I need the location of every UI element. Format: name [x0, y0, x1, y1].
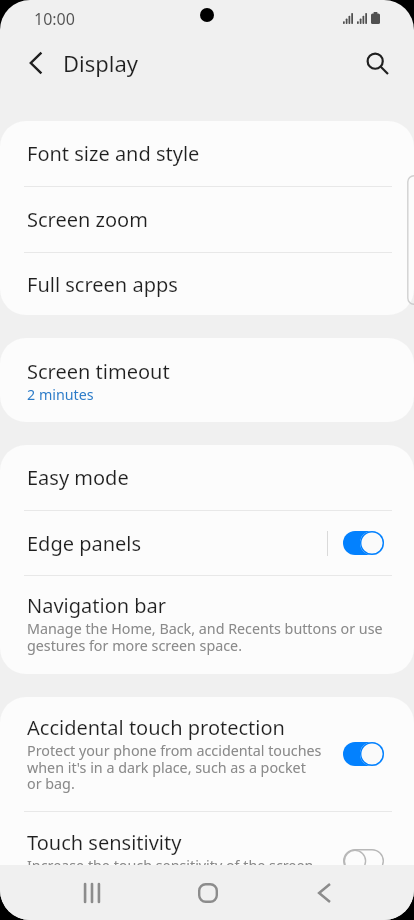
button[interactable]: Edge panels — [0, 511, 414, 575]
staticText: Font size and style — [27, 140, 200, 167]
staticText: Navigation bar — [27, 592, 167, 619]
button[interactable]: Home — [178, 865, 238, 920]
button[interactable]: Navigation bar — [0, 576, 414, 674]
button[interactable]: Back — [294, 865, 354, 920]
staticText: 10:00 — [34, 8, 75, 30]
button[interactable]: Easy mode — [0, 445, 414, 510]
staticText: Easy mode — [27, 464, 129, 491]
button[interactable]: Search — [353, 39, 401, 87]
staticText: Screen timeout — [27, 358, 170, 385]
button[interactable]: Screen timeout — [0, 338, 414, 422]
staticText: Manage the Home, Back, and Recents butto… — [27, 619, 383, 655]
button[interactable]: Off — [343, 849, 384, 873]
button[interactable]: Accidental touch protection — [0, 697, 414, 811]
button[interactable]: On — [343, 531, 384, 555]
button[interactable]: Navigate up — [12, 39, 60, 87]
button[interactable]: Full screen apps — [0, 253, 414, 315]
staticText: Accidental touch protection — [27, 714, 285, 741]
staticText: Increase the touch sensitivity of the sc… — [27, 856, 314, 892]
button[interactable]: On — [343, 742, 384, 766]
button[interactable]: Screen zoom — [0, 187, 414, 252]
staticText: Full screen apps — [27, 271, 178, 298]
button[interactable]: Font size and style — [0, 121, 414, 186]
staticText: Protect your phone from accidental touch… — [27, 741, 322, 793]
button[interactable]: Touch sensitivity — [0, 812, 414, 910]
staticText: Edge panels — [27, 530, 327, 557]
staticText: Touch sensitivity — [27, 829, 182, 856]
staticText: Display — [63, 48, 139, 78]
staticText: Screen zoom — [27, 206, 148, 233]
button[interactable]: Recent apps — [62, 865, 122, 920]
staticText: 2 minutes — [27, 385, 94, 404]
